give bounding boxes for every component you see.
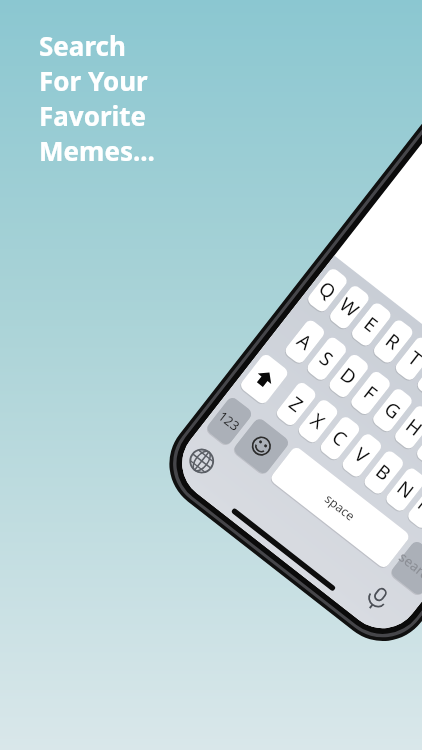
staticText: For Your bbox=[39, 63, 148, 98]
staticText: Memes... bbox=[39, 133, 155, 168]
staticText: Favorite bbox=[39, 98, 147, 133]
staticText: Search bbox=[39, 28, 126, 63]
button[interactable]: Phone showing keyboard bbox=[0, 0, 422, 750]
button[interactable]: Search bbox=[39, 28, 155, 168]
